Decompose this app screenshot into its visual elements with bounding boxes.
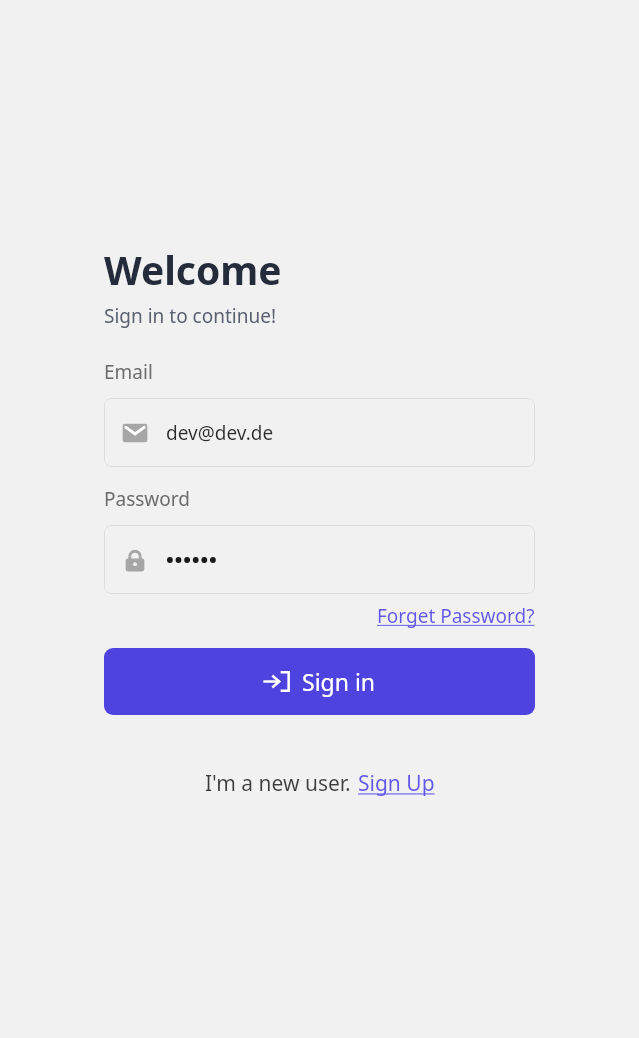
button[interactable]: Sign in bbox=[104, 648, 535, 715]
staticText: Forget Password? bbox=[377, 603, 535, 629]
staticText: dev@dev.de bbox=[166, 420, 274, 446]
staticText: Email bbox=[104, 359, 153, 385]
staticText: I'm a new user. bbox=[205, 769, 351, 798]
button[interactable]: Forget Password? bbox=[377, 603, 535, 629]
staticText: Sign in to continue! bbox=[104, 303, 277, 329]
button[interactable] bbox=[104, 525, 535, 594]
button[interactable]: Sign Up bbox=[358, 769, 435, 798]
staticText: Sign Up bbox=[358, 769, 435, 798]
staticText: Welcome bbox=[104, 243, 282, 296]
staticText: Password bbox=[104, 486, 190, 512]
button[interactable]: dev@dev.de bbox=[104, 398, 535, 467]
staticText: Sign in bbox=[302, 666, 376, 697]
